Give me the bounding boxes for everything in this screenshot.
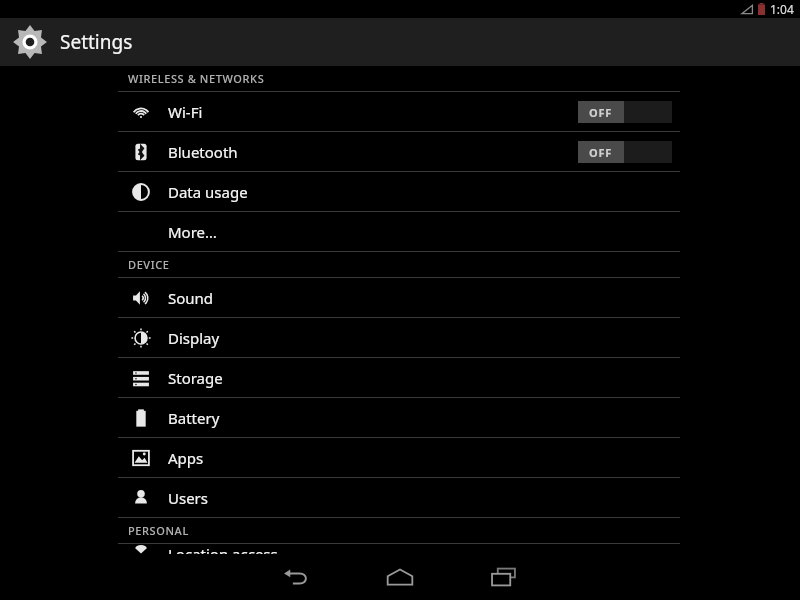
button[interactable]: Location access xyxy=(118,544,680,554)
button[interactable]: Wi-Fi xyxy=(118,92,680,131)
staticText: Settings xyxy=(60,29,133,55)
button[interactable]: Users xyxy=(118,478,680,517)
button[interactable]: Apps xyxy=(118,438,680,477)
button[interactable]: Settings xyxy=(0,18,800,66)
button[interactable]: Home xyxy=(364,557,436,597)
staticText: Wi-Fi xyxy=(168,102,578,122)
button[interactable]: Data usage xyxy=(118,172,680,211)
staticText: Sound xyxy=(168,288,676,308)
staticText: OFF xyxy=(589,145,613,160)
button[interactable]: Sound xyxy=(118,278,680,317)
staticText: Battery xyxy=(168,408,676,428)
staticText: Location access xyxy=(168,544,676,554)
button[interactable]: Battery xyxy=(118,398,680,437)
staticText: 1:04 xyxy=(770,1,794,17)
button[interactable]: Bluetooth xyxy=(118,132,680,171)
button[interactable]: More… xyxy=(118,212,680,251)
staticText: DEVICE xyxy=(128,257,170,272)
button[interactable]: Storage xyxy=(118,358,680,397)
button[interactable]: Toggle off xyxy=(578,101,672,123)
staticText: Users xyxy=(168,488,676,508)
staticText: Display xyxy=(168,328,676,348)
button[interactable]: Display xyxy=(118,318,680,357)
staticText: WIRELESS & NETWORKS xyxy=(128,71,265,86)
staticText: Apps xyxy=(168,448,676,468)
button[interactable]: Recent apps xyxy=(468,557,540,597)
button[interactable]: Back xyxy=(260,557,332,597)
staticText: Data usage xyxy=(168,182,676,202)
staticText: PERSONAL xyxy=(128,523,189,538)
staticText: OFF xyxy=(589,105,613,120)
button[interactable]: Toggle off xyxy=(578,141,672,163)
staticText: More… xyxy=(168,222,676,242)
staticText: Bluetooth xyxy=(168,142,578,162)
staticText: Storage xyxy=(168,368,676,388)
